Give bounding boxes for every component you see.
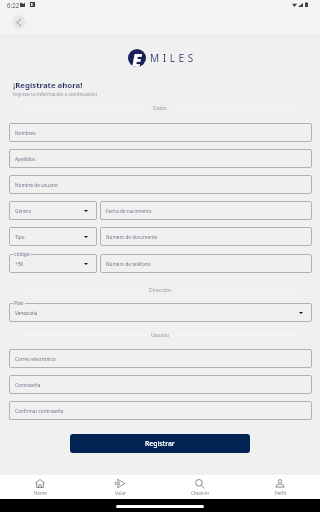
staticText: Correo electrónico bbox=[15, 356, 56, 362]
staticText: Check-in bbox=[191, 490, 210, 496]
staticText: Apellidos bbox=[15, 156, 36, 162]
button[interactable]: Volar bbox=[80, 475, 160, 499]
button[interactable]: Género bbox=[9, 201, 97, 220]
staticText: País bbox=[14, 300, 24, 307]
button[interactable]: Apellidos bbox=[9, 149, 312, 168]
staticText: Nombre de usuario bbox=[15, 182, 58, 188]
staticText: Dirección bbox=[149, 287, 171, 294]
staticText: Contraseña bbox=[15, 382, 41, 388]
staticText: +58 bbox=[15, 261, 24, 267]
staticText: Tipo bbox=[15, 234, 25, 240]
staticText: Perfil bbox=[275, 490, 286, 496]
button[interactable]: Número de teléfono bbox=[100, 254, 312, 273]
staticText: Usuario bbox=[151, 332, 170, 339]
staticText: Fecha de nacimiento bbox=[106, 208, 152, 214]
button[interactable]: Nombre de usuario bbox=[9, 175, 312, 194]
staticText: Confirmar contraseña bbox=[15, 408, 64, 414]
button[interactable]: Correo electrónico bbox=[9, 349, 312, 368]
button[interactable]: Perfil bbox=[240, 475, 320, 499]
staticText: Género bbox=[15, 208, 32, 214]
button[interactable]: Check-in bbox=[160, 475, 240, 499]
staticText: E bbox=[132, 49, 142, 67]
button[interactable]: Fecha de nacimiento bbox=[100, 201, 312, 220]
staticText: Datos bbox=[153, 105, 167, 112]
staticText: Venezuela bbox=[15, 310, 38, 316]
staticText: código bbox=[14, 251, 30, 258]
staticText: Número de teléfono bbox=[106, 261, 151, 267]
button[interactable]: +58 bbox=[9, 254, 97, 273]
staticText: ¡Regístrate ahora! bbox=[13, 80, 83, 91]
staticText: Número de documento bbox=[106, 234, 158, 240]
button[interactable]: Contraseña bbox=[9, 375, 312, 394]
button[interactable]: Tipo bbox=[9, 227, 97, 246]
staticText: Registrar bbox=[145, 439, 175, 448]
staticText: Nombres bbox=[15, 130, 36, 136]
button[interactable]: Home bbox=[0, 475, 80, 499]
staticText: 6:22 bbox=[7, 1, 20, 9]
button[interactable]: Venezuela bbox=[9, 303, 312, 322]
button[interactable]: Nombres bbox=[9, 123, 312, 142]
staticText: Home bbox=[34, 490, 47, 496]
staticText: Volar bbox=[115, 490, 126, 496]
staticText: MILES bbox=[150, 51, 197, 65]
button[interactable]: Confirmar contraseña bbox=[9, 401, 312, 420]
staticText: Ingrese tu información a continuación bbox=[13, 91, 98, 97]
button[interactable]: Back bbox=[12, 15, 26, 29]
button[interactable]: Número de documento bbox=[100, 227, 312, 246]
button[interactable]: Registrar bbox=[70, 434, 250, 453]
